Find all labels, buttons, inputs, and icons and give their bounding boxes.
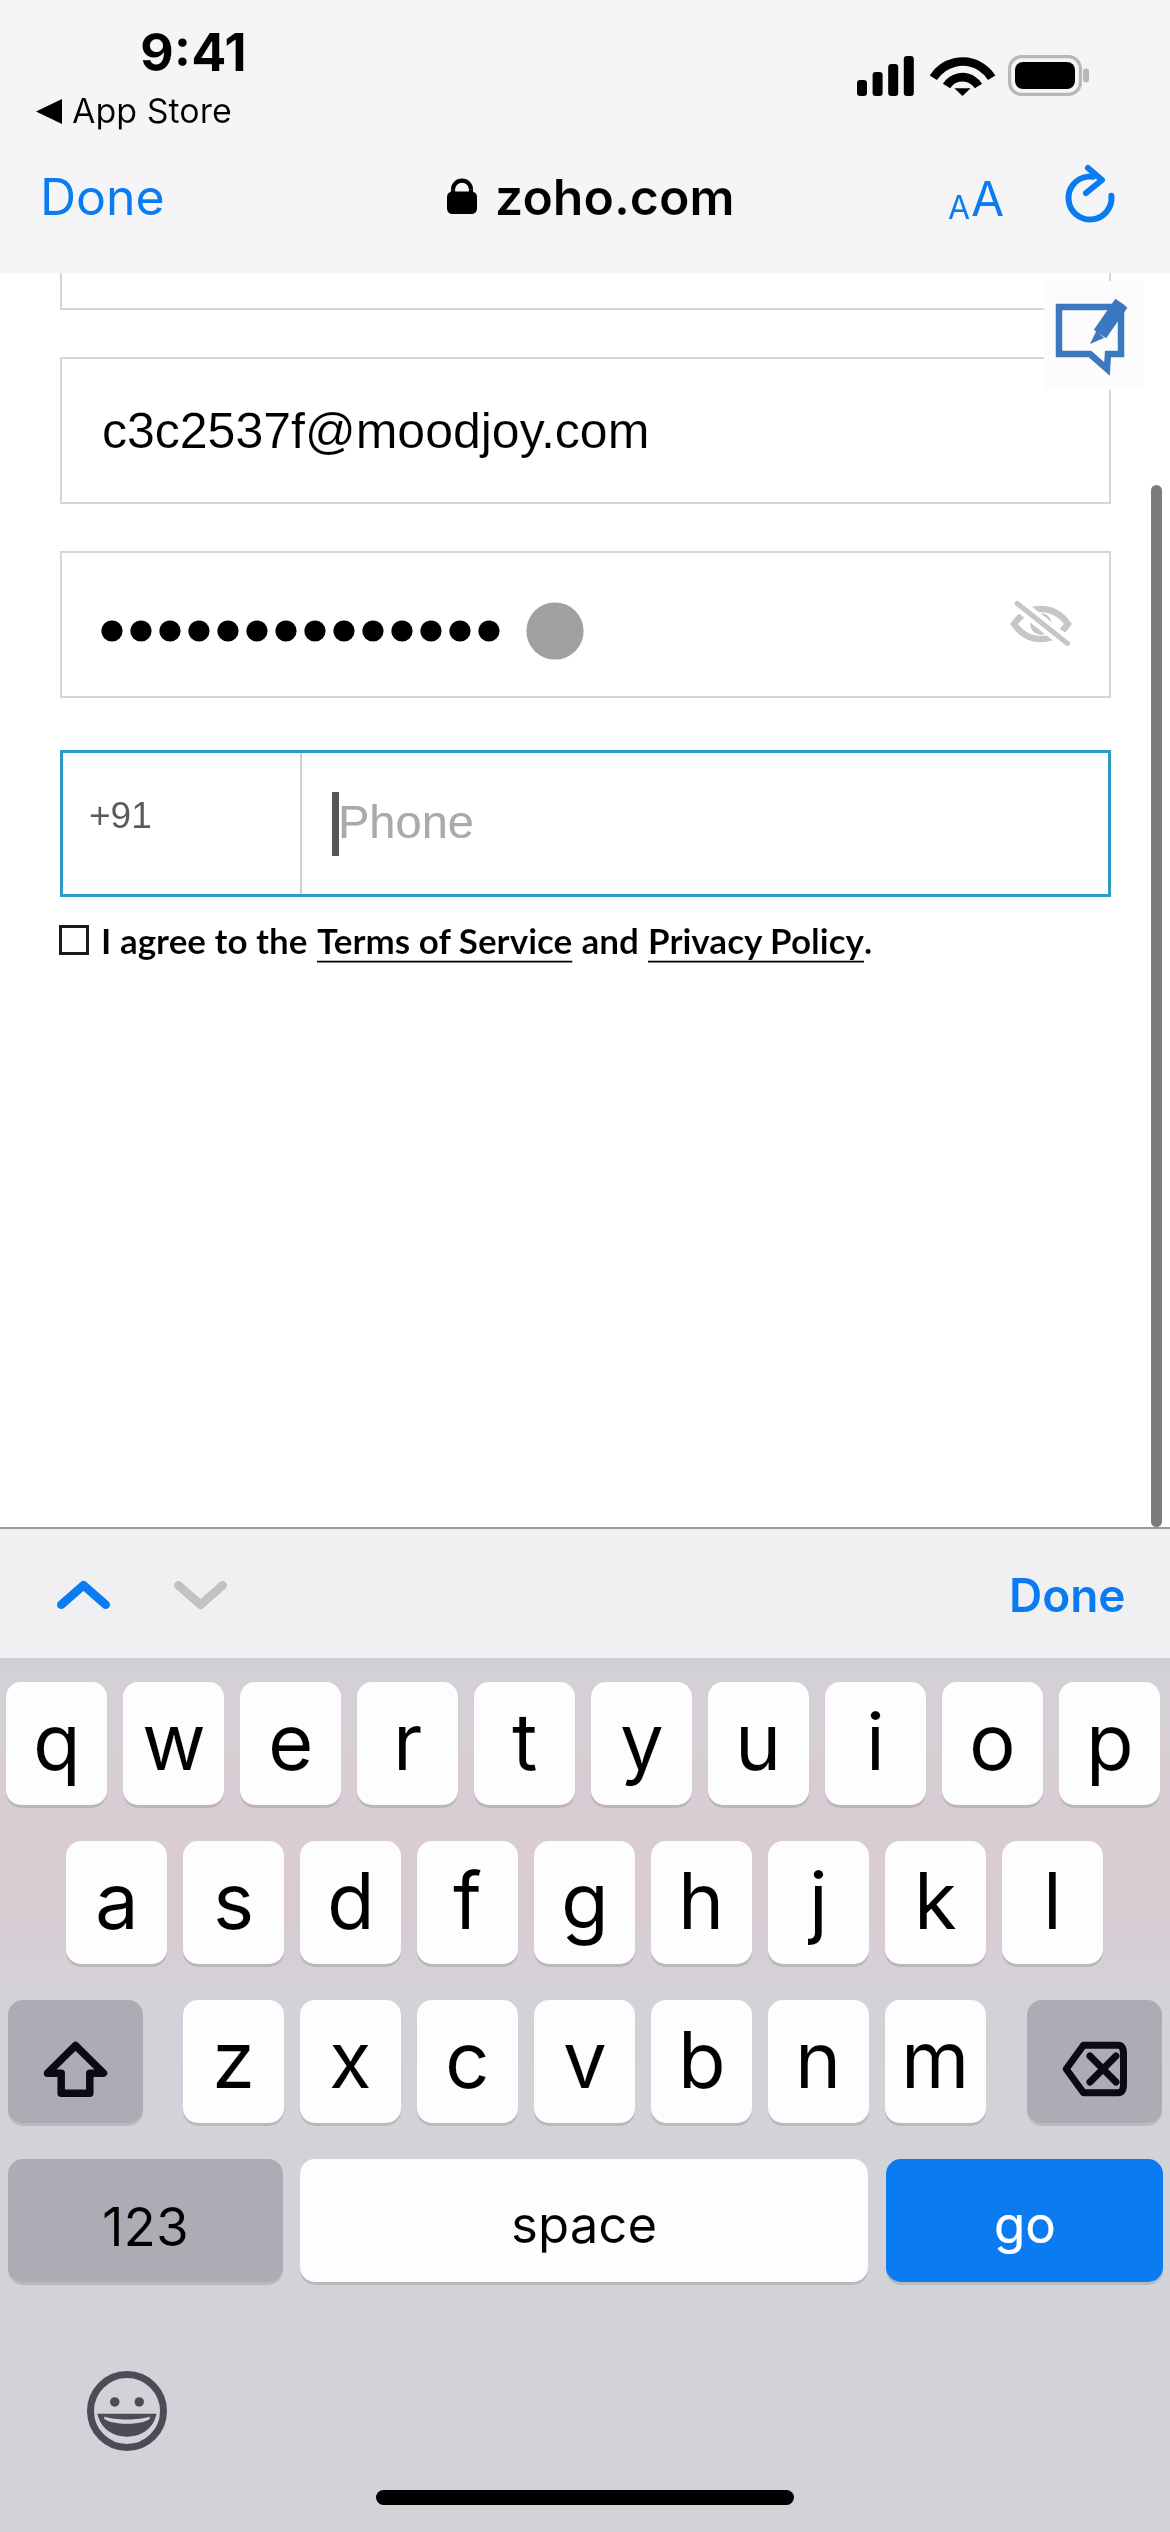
staticText: s	[213, 1853, 255, 1947]
staticText: Done	[40, 167, 165, 227]
button[interactable]: u	[708, 1682, 809, 1805]
button[interactable]: App Store	[24, 82, 254, 138]
staticText: b	[678, 2012, 726, 2106]
button[interactable]: q	[6, 1682, 107, 1805]
staticText: l	[1043, 1853, 1062, 1947]
staticText: m	[901, 2012, 970, 2106]
button[interactable]: x	[300, 2000, 401, 2123]
button[interactable]: s	[183, 1841, 284, 1964]
button[interactable]: 123	[8, 2159, 283, 2282]
staticText: App Store	[72, 90, 232, 131]
button[interactable]: a	[66, 1841, 167, 1964]
button[interactable]: v	[534, 2000, 635, 2123]
button[interactable]: t	[474, 1682, 575, 1805]
staticText: e	[268, 1694, 314, 1788]
staticText: and	[573, 919, 648, 961]
staticText: Phone	[338, 795, 474, 848]
staticText: space	[511, 2194, 658, 2256]
button[interactable]	[62, 553, 1109, 696]
button[interactable]: o	[942, 1682, 1043, 1805]
staticText: Done	[1009, 1567, 1126, 1623]
staticText: u	[735, 1694, 782, 1788]
staticText: A	[948, 188, 971, 227]
button[interactable]: l	[1002, 1841, 1103, 1964]
staticText: i	[866, 1694, 885, 1788]
staticText: c3c2537f@moodjoy.com	[102, 403, 650, 459]
staticText: w	[142, 1694, 206, 1788]
staticText: t	[512, 1694, 538, 1788]
button[interactable]: y	[591, 1682, 692, 1805]
staticText: p	[1086, 1694, 1134, 1788]
button[interactable]: p	[1059, 1682, 1160, 1805]
button[interactable]: j	[768, 1841, 869, 1964]
staticText: d	[327, 1853, 375, 1947]
staticText: h	[678, 1853, 725, 1947]
button[interactable]: Next field	[152, 1540, 249, 1645]
button[interactable]: Backspace	[1027, 2000, 1162, 2123]
staticText: I agree to the	[101, 919, 317, 961]
button[interactable]: c	[417, 2000, 518, 2123]
staticText: r	[393, 1694, 423, 1788]
button[interactable]: Text size	[930, 158, 1022, 238]
button[interactable]: g	[534, 1841, 635, 1964]
staticText: zoho.com	[495, 167, 735, 227]
button[interactable]: Previous field	[35, 1540, 132, 1645]
button[interactable]: Chat with us	[1044, 281, 1144, 390]
staticText: A	[971, 169, 1005, 227]
staticText: k	[914, 1853, 957, 1947]
staticText: v	[563, 2012, 607, 2106]
staticText: Terms of Service	[317, 919, 573, 961]
staticText: y	[620, 1694, 664, 1788]
button[interactable]: k	[885, 1841, 986, 1964]
button[interactable]: Shift	[8, 2000, 143, 2123]
staticText: go	[994, 2194, 1056, 2256]
staticText: f	[453, 1853, 482, 1947]
button[interactable]: b	[651, 2000, 752, 2123]
button[interactable]: w	[123, 1682, 224, 1805]
staticText: q	[33, 1694, 81, 1788]
staticText: x	[329, 2012, 372, 2106]
button[interactable]: m	[885, 2000, 986, 2123]
staticText: j	[809, 1853, 828, 1947]
button[interactable]: Privacy Policy	[648, 919, 864, 961]
staticText: c	[445, 2012, 490, 2106]
staticText: +91	[89, 795, 152, 836]
button[interactable]: Reload	[1050, 158, 1130, 238]
button[interactable]: z	[183, 2000, 284, 2123]
staticText: Privacy Policy	[648, 919, 864, 961]
staticText: o	[969, 1694, 1016, 1788]
button[interactable]: space	[300, 2159, 868, 2282]
button[interactable]: h	[651, 1841, 752, 1964]
button[interactable]: go	[886, 2159, 1163, 2282]
button[interactable]: Terms of Service	[317, 919, 573, 961]
button[interactable]: Emoji keyboard	[87, 2371, 167, 2451]
button[interactable]: f	[417, 1841, 518, 1964]
button[interactable]: n	[768, 2000, 869, 2123]
staticText: 9:41	[140, 21, 247, 84]
button[interactable]: e	[240, 1682, 341, 1805]
button[interactable]: Done	[990, 1540, 1155, 1645]
button[interactable]: r	[357, 1682, 458, 1805]
staticText: 123	[102, 2195, 189, 2259]
staticText: g	[561, 1853, 609, 1947]
button[interactable]: c3c2537f@moodjoy.com	[62, 359, 1109, 502]
staticText: a	[95, 1853, 139, 1947]
button[interactable]: i	[825, 1682, 926, 1805]
button[interactable]: Done	[24, 153, 181, 241]
button[interactable]: d	[300, 1841, 401, 1964]
staticText: z	[212, 2012, 256, 2106]
staticText: .	[864, 919, 873, 961]
staticText: n	[795, 2012, 842, 2106]
